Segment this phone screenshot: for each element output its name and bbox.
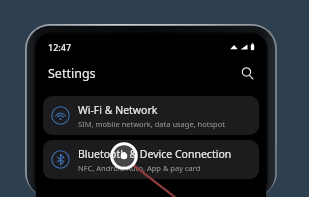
staticText: SIM, mobile network, data usage, hotspot [78,119,225,129]
staticText: Settings [48,65,96,82]
button[interactable]: Wi-Fi & Network [43,96,259,135]
button[interactable]: Search [237,63,257,83]
staticText: Wi-Fi & Network [78,103,158,117]
staticText: Bluetooth & Device Connection [78,147,232,161]
button[interactable]: Bluetooth & Device Connection [43,140,259,179]
staticText: NFC, Android Auto, App & pay card [78,163,201,173]
staticText: 12:47 [48,41,72,53]
